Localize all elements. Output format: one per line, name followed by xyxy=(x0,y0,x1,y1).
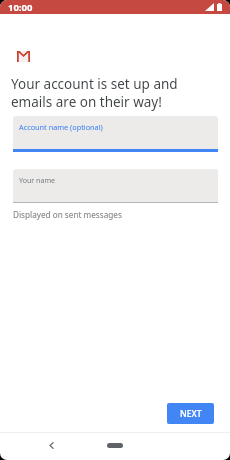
button[interactable]: Your name xyxy=(13,169,218,203)
button[interactable]: Account name (optional) xyxy=(13,116,218,152)
staticText: Your name xyxy=(19,175,56,185)
staticText: NEXT xyxy=(180,408,202,420)
staticText: Your account is set up and emails are on… xyxy=(11,75,178,111)
staticText: Account name (optional) xyxy=(19,122,103,132)
staticText: Displayed on sent messages xyxy=(13,209,122,220)
button[interactable]: Back xyxy=(43,437,59,453)
button[interactable]: NEXT xyxy=(167,403,214,424)
staticText: 10:00 xyxy=(8,1,33,14)
button[interactable]: Home xyxy=(107,443,123,448)
